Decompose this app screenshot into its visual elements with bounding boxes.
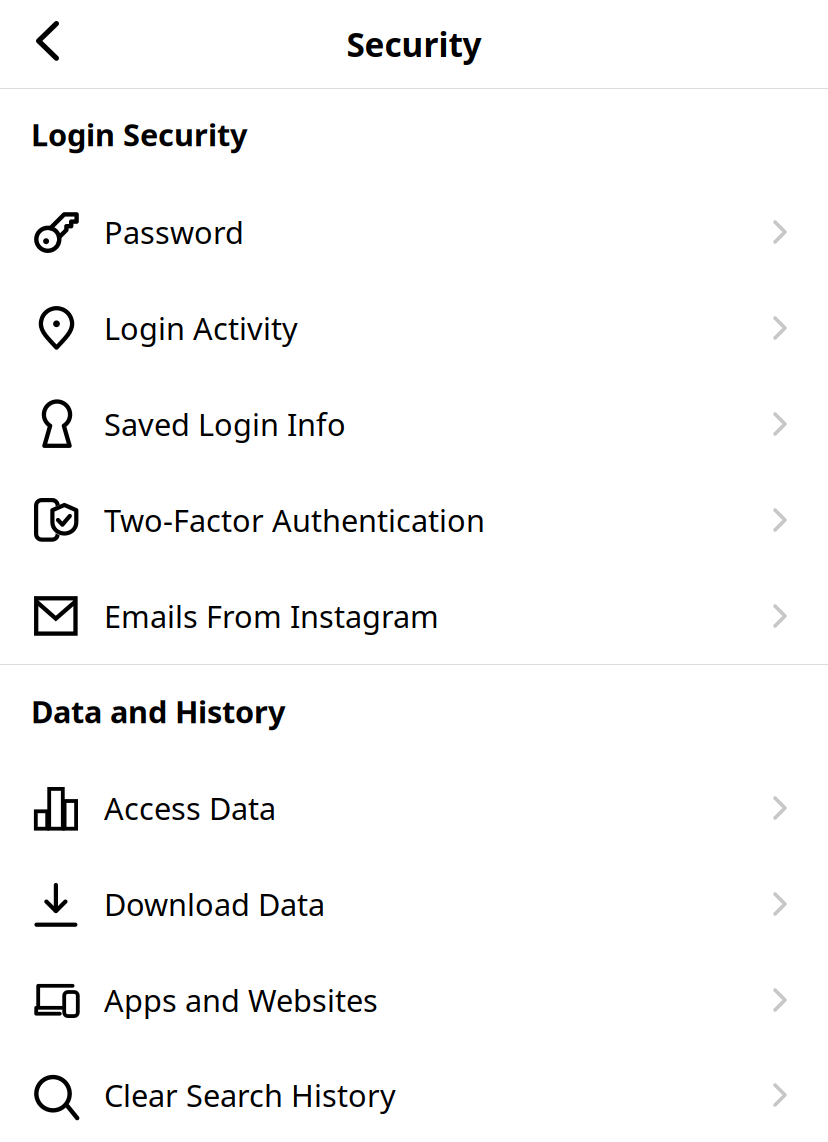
button[interactable]: Download Data <box>0 856 828 952</box>
staticText: Download Data <box>104 884 325 924</box>
button[interactable]: Emails From Instagram <box>0 568 828 664</box>
staticText: Security <box>346 22 481 66</box>
button[interactable]: Password <box>0 184 828 280</box>
staticText: Data and History <box>31 691 286 732</box>
staticText: Saved Login Info <box>104 404 346 444</box>
button[interactable]: Access Data <box>0 760 828 856</box>
button[interactable]: Back <box>0 0 89 88</box>
button[interactable]: Apps and Websites <box>0 952 828 1048</box>
staticText: Clear Search History <box>104 1075 396 1115</box>
button[interactable]: Clear Search History <box>0 1047 828 1142</box>
staticText: Login Security <box>31 114 248 155</box>
button[interactable]: Saved Login Info <box>0 376 828 472</box>
staticText: Login Activity <box>104 308 298 348</box>
staticText: Apps and Websites <box>104 980 378 1020</box>
staticText: Emails From Instagram <box>104 596 439 636</box>
staticText: Access Data <box>104 788 276 828</box>
staticText: Password <box>104 212 244 252</box>
button[interactable]: Two-Factor Authentication <box>0 472 828 568</box>
staticText: Two-Factor Authentication <box>104 500 485 540</box>
button[interactable]: Login Activity <box>0 280 828 376</box>
